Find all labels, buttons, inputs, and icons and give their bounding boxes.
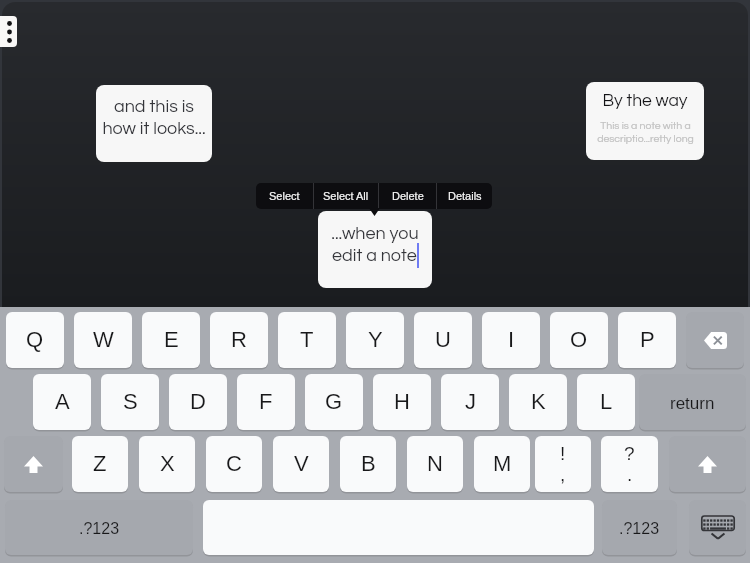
staticText: By the way [602,92,688,110]
staticText: S [123,389,138,414]
button[interactable]: V [273,436,329,492]
staticText: J [465,389,476,414]
staticText: .?123 [79,520,120,538]
staticText: E [164,327,179,352]
staticText: B [361,451,376,476]
staticText: .?123 [619,520,660,538]
button[interactable]: K [509,374,567,430]
button[interactable]: L [577,374,635,430]
staticText: G [325,389,343,414]
button[interactable]: R [210,312,268,368]
staticText: O [570,327,588,352]
staticText: Details [448,190,482,202]
button[interactable]: H [373,374,431,430]
button[interactable]: .?123 [602,500,677,555]
button[interactable]: Delete [379,183,436,209]
staticText: P [640,327,655,352]
button[interactable]: U [414,312,472,368]
staticText: Select All [323,190,369,202]
button[interactable]: .?123 [5,500,193,555]
staticText: Select [269,190,300,202]
button[interactable]: O [550,312,608,368]
staticText: ...when you [331,224,419,243]
staticText: K [531,389,546,414]
staticText: Y [368,327,383,352]
button[interactable]: N [407,436,463,492]
button[interactable]: I [482,312,540,368]
button[interactable]: J [441,374,499,430]
button[interactable]: ! [535,436,591,492]
button[interactable]: B [340,436,396,492]
staticText: This is a note with a descriptio...retty… [597,120,694,144]
button[interactable]: W [74,312,132,368]
button[interactable]: Hide keyboard [689,500,746,555]
button[interactable]: M [474,436,530,492]
button[interactable]: Details [437,183,492,209]
button[interactable]: D [169,374,227,430]
staticText: I [508,327,515,352]
staticText: , [560,464,566,485]
button[interactable]: ? [601,436,658,492]
staticText: Delete [392,190,424,202]
button[interactable]: F [237,374,295,430]
staticText: edit a note [332,246,417,265]
button[interactable]: X [139,436,195,492]
button[interactable]: and this is how it looks... [96,85,212,162]
staticText: C [226,451,242,476]
button[interactable]: S [101,374,159,430]
button[interactable]: Backspace [686,312,744,368]
staticText: W [93,327,114,352]
button[interactable]: Select [256,183,313,209]
button[interactable]: ...when you [318,211,432,288]
staticText: ? [624,443,635,464]
button[interactable]: Space [203,500,594,555]
staticText: T [300,327,314,352]
staticText: V [294,451,309,476]
staticText: F [259,389,273,414]
staticText: R [231,327,247,352]
button[interactable]: T [278,312,336,368]
button[interactable]: Q [6,312,64,368]
staticText: X [160,451,175,476]
staticText: N [427,451,443,476]
staticText: ! [560,443,566,464]
button[interactable]: C [206,436,262,492]
staticText: A [55,389,70,414]
button[interactable]: E [142,312,200,368]
button[interactable]: Select All [314,183,378,209]
staticText: D [190,389,206,414]
button[interactable]: G [305,374,363,430]
button[interactable]: P [618,312,676,368]
button[interactable]: A [33,374,91,430]
staticText: return [670,394,715,413]
staticText: . [627,464,633,485]
staticText: M [493,451,512,476]
staticText: and this is how it looks... [102,97,206,138]
button[interactable]: More options [0,16,17,47]
button[interactable]: Shift [669,436,746,492]
staticText: U [435,327,451,352]
button[interactable]: return [639,374,746,430]
button[interactable]: Shift [4,436,63,492]
button[interactable]: By the way [586,82,704,160]
staticText: L [600,389,613,414]
staticText: Z [93,451,107,476]
button[interactable]: Z [72,436,128,492]
staticText: Q [26,327,44,352]
staticText: H [394,389,410,414]
button[interactable]: Y [346,312,404,368]
